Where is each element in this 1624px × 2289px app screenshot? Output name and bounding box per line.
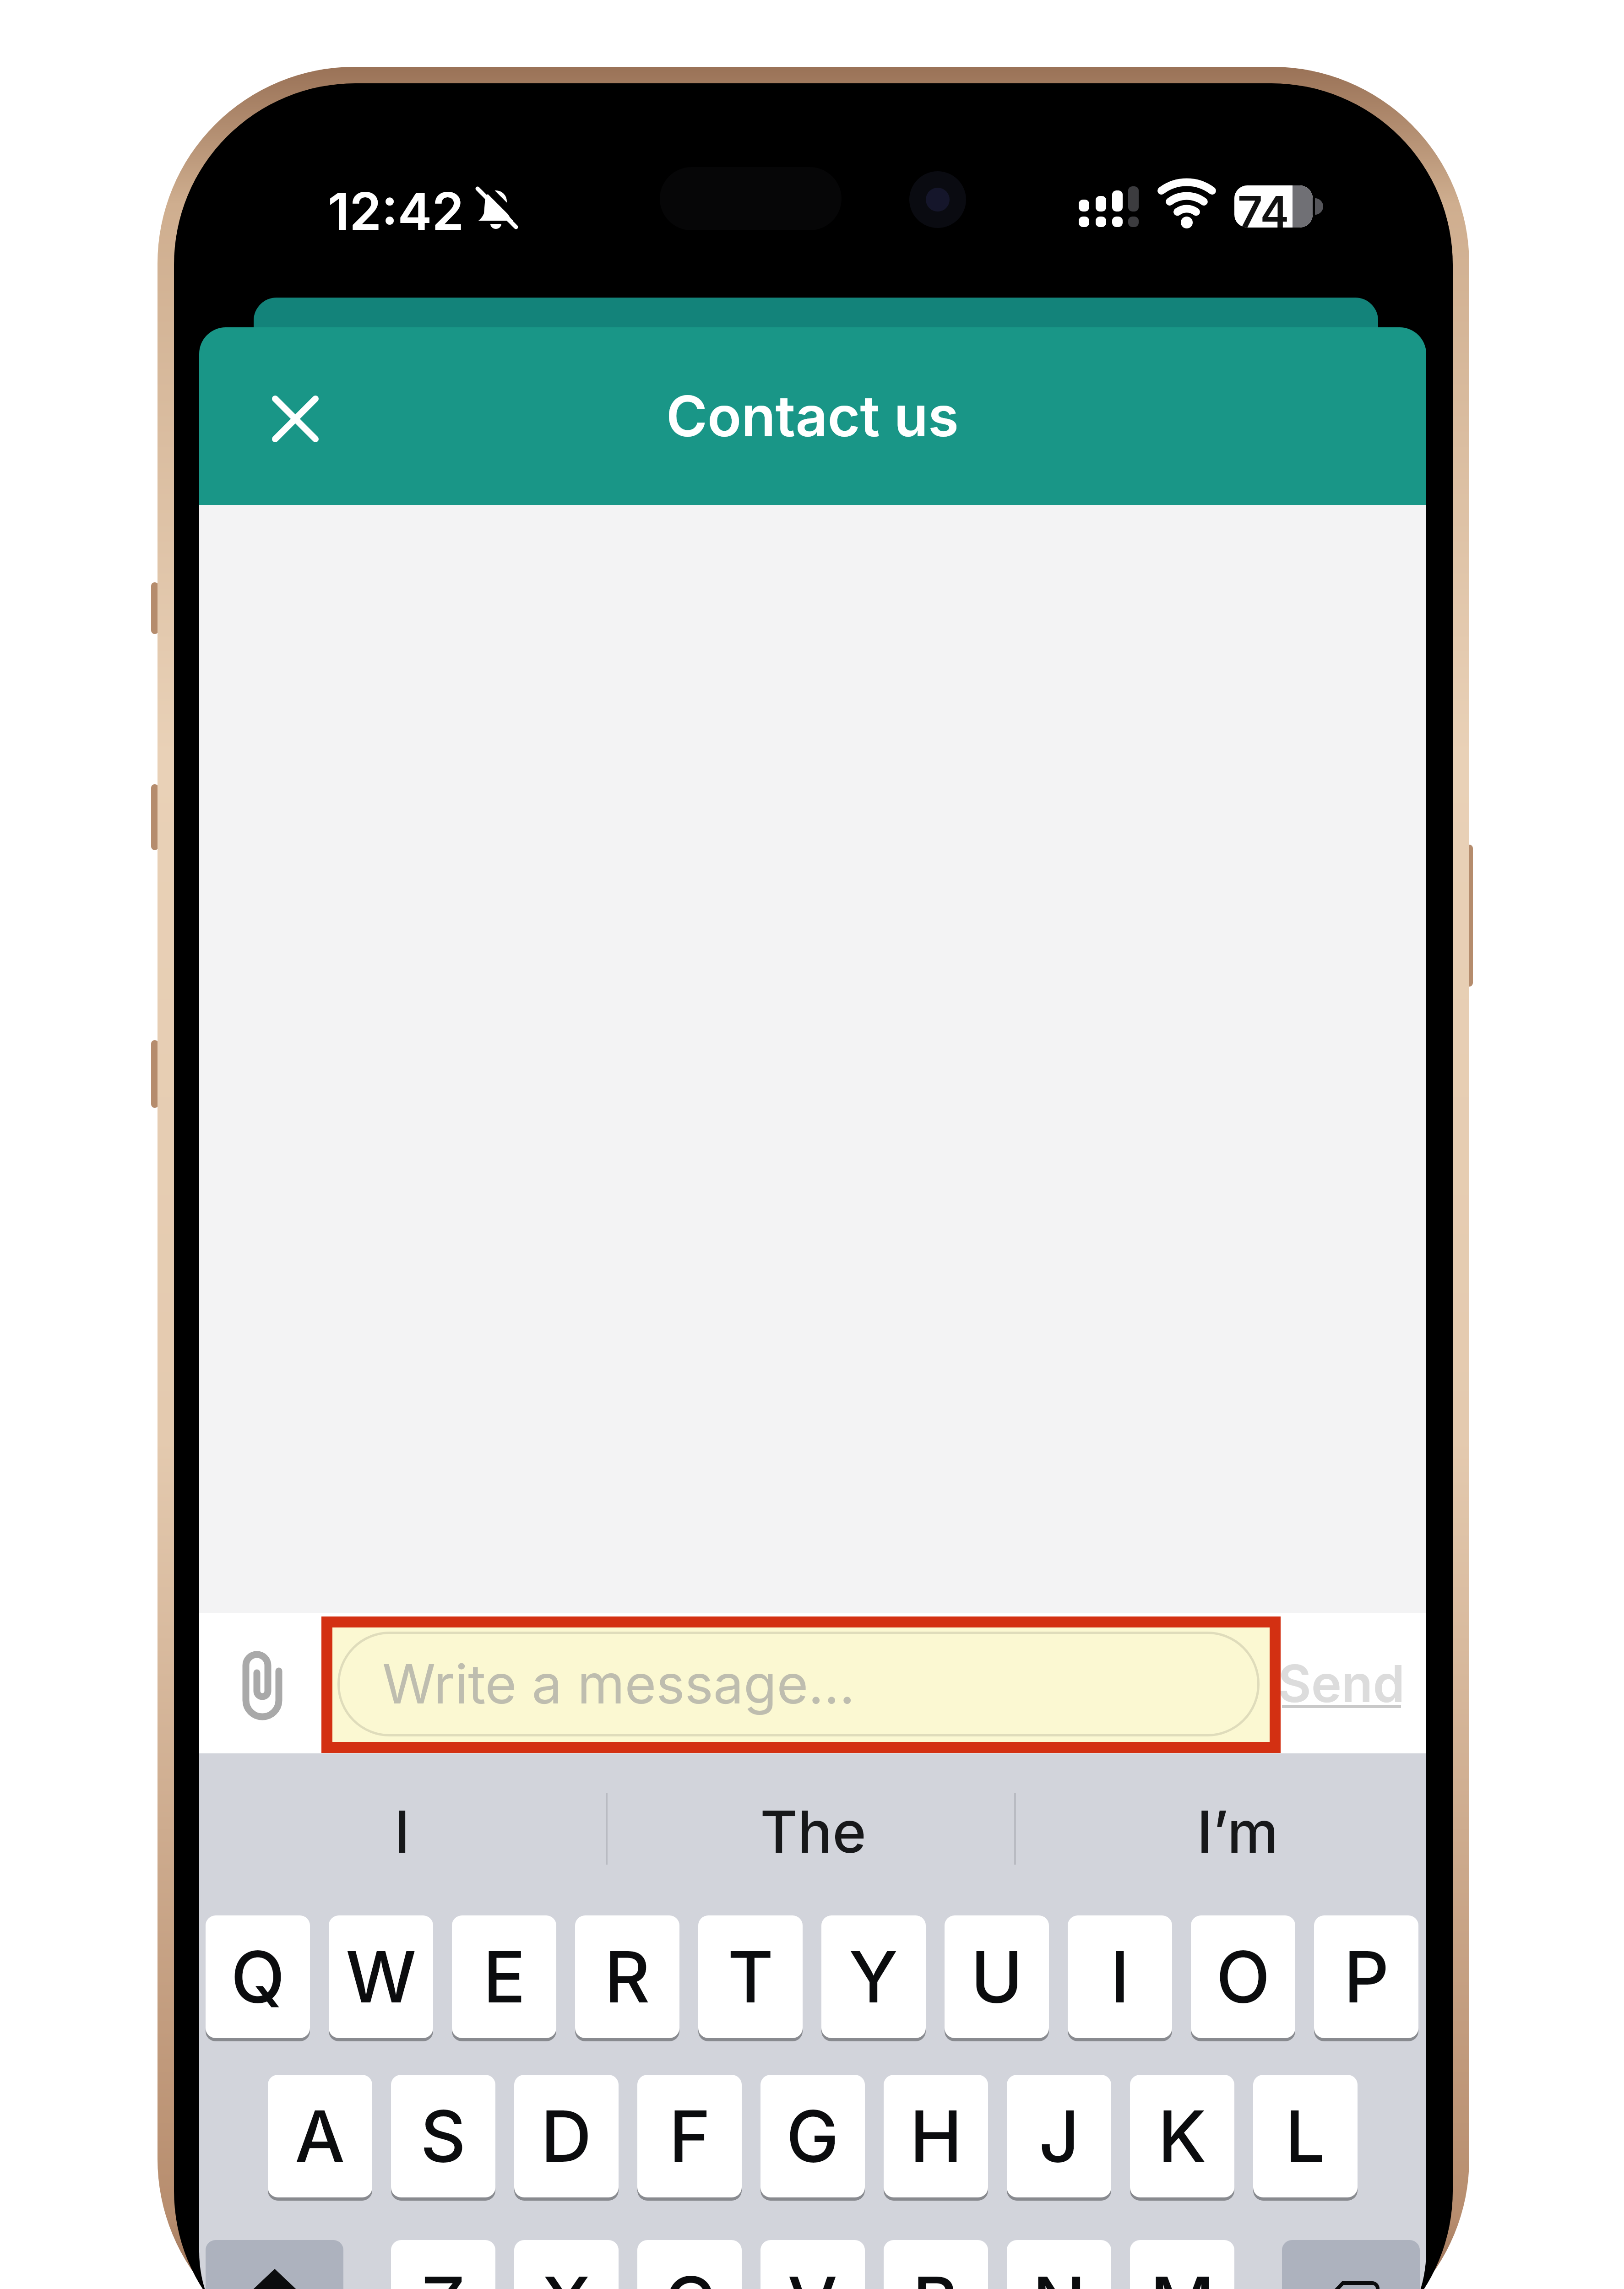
staticText: T [728,1934,774,2019]
staticText: Contact us [666,382,959,450]
staticText: Z [421,2260,466,2289]
button[interactable]: I [265,1797,539,1861]
button[interactable]: W [329,1915,433,2038]
button[interactable]: S [391,2075,495,2197]
button[interactable]: K [1130,2075,1234,2197]
staticText: Write a message... [382,1651,855,1717]
button[interactable]: M [1130,2240,1234,2289]
button[interactable]: A [268,2075,372,2197]
button[interactable]: C [637,2240,742,2289]
staticText: K [1158,2094,1206,2179]
staticText: S [420,2094,466,2179]
button[interactable]: G [760,2075,865,2197]
staticText: 12:42 [328,180,464,239]
staticText: I’m [1197,1797,1279,1861]
button[interactable]: T [698,1915,803,2038]
button[interactable]: U [945,1915,1049,2038]
staticText: Send [1278,1652,1405,1714]
button[interactable]: H [884,2075,988,2197]
button[interactable]: F [637,2075,742,2197]
staticText: Y [849,1934,898,2019]
staticText: I [1110,1934,1130,2019]
button[interactable]: I’m [1100,1797,1375,1861]
staticText: M [1150,2260,1215,2289]
button[interactable]: L [1253,2075,1358,2197]
button[interactable]: E [452,1915,556,2038]
staticText: O [1216,1934,1271,2019]
button[interactable]: J [1007,2075,1111,2197]
button[interactable]: I [1068,1915,1172,2038]
button[interactable]: P [1314,1915,1418,2038]
button[interactable] [259,382,332,456]
staticText: The [760,1797,867,1861]
staticText: E [483,1934,526,2019]
staticText: B [912,2260,959,2289]
staticText: W [346,1934,417,2019]
button[interactable] [206,2240,343,2289]
staticText: F [669,2094,711,2179]
staticText: V [788,2260,838,2289]
staticText: D [541,2094,592,2179]
button[interactable]: R [575,1915,679,2038]
staticText: I [394,1797,410,1861]
button[interactable] [1282,2240,1420,2289]
button[interactable]: D [514,2075,619,2197]
button[interactable]: V [760,2240,865,2289]
button[interactable]: Z [391,2240,495,2289]
staticText: X [542,2260,591,2289]
staticText: L [1285,2094,1325,2179]
staticText: G [786,2094,839,2179]
staticText: P [1344,1934,1389,2019]
staticText: 74 [1238,185,1289,228]
staticText: C [664,2260,716,2289]
button[interactable]: O [1191,1915,1295,2038]
staticText: U [971,1934,1023,2019]
button[interactable]: Q [206,1915,310,2038]
staticText: J [1039,2094,1080,2179]
button[interactable]: The [676,1797,951,1861]
button[interactable]: Write a message... [337,1632,1260,1736]
button[interactable]: N [1007,2240,1111,2289]
staticText: N [1032,2260,1086,2289]
button[interactable]: Y [821,1915,926,2038]
staticText: A [295,2094,345,2179]
button[interactable]: B [884,2240,988,2289]
button[interactable]: X [514,2240,619,2289]
staticText: H [910,2094,962,2179]
staticText: R [604,1934,650,2019]
staticText: Q [231,1934,285,2019]
button[interactable]: Send [1271,1652,1412,1714]
